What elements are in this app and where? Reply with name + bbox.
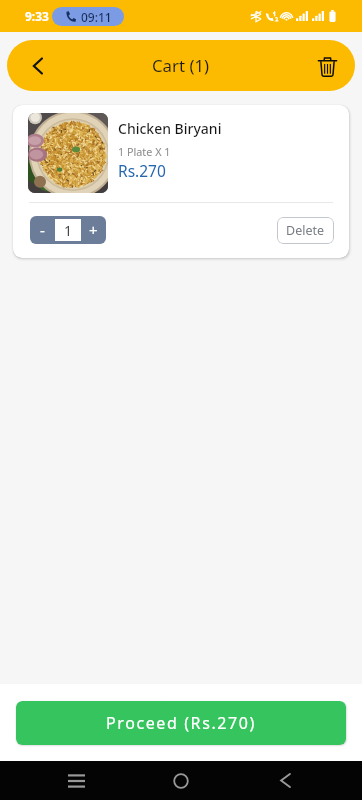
button[interactable]: Delete cart (312, 51, 342, 81)
button[interactable]: Back (21, 49, 55, 83)
button[interactable]: Home (161, 761, 201, 800)
staticText: Cart (1) (152, 54, 210, 77)
staticText: + (89, 220, 98, 240)
staticText: - (40, 220, 45, 240)
button[interactable]: Delete (277, 217, 334, 244)
staticText: 1 Plate X 1 (118, 144, 171, 159)
staticText: 1 (64, 221, 73, 240)
button[interactable]: Increase quantity (81, 216, 106, 244)
staticText: 09:11 (81, 9, 112, 25)
button[interactable]: Recent apps (56, 761, 96, 800)
staticText: Delete (286, 222, 325, 239)
staticText: Rs.270 (118, 160, 166, 181)
staticText: Chicken Biryani (118, 119, 222, 138)
staticText: Proceed (Rs.270) (106, 712, 256, 734)
button[interactable]: Proceed (Rs.270) (16, 701, 346, 745)
staticText: 9:33 (25, 8, 49, 24)
button[interactable]: Decrease quantity (30, 216, 55, 244)
button[interactable]: Back (265, 761, 305, 800)
